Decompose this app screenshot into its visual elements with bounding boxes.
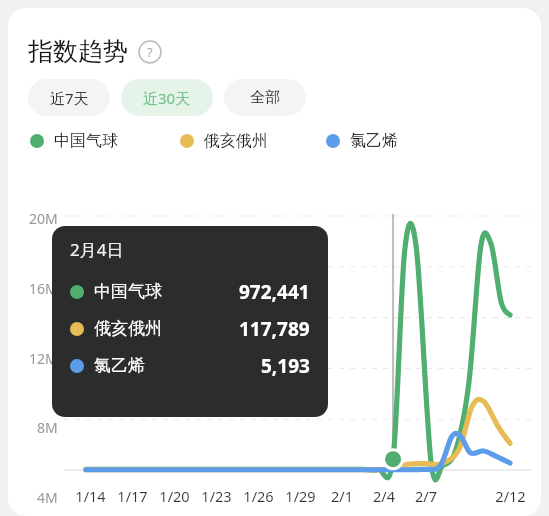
button[interactable]: 俄亥俄州 xyxy=(180,131,268,151)
staticText: 1/23 xyxy=(201,486,232,506)
staticText: 1/20 xyxy=(159,486,190,506)
staticText: 全部 xyxy=(250,88,280,107)
button[interactable]: 2月4日 xyxy=(52,226,328,417)
staticText: 5,193 xyxy=(261,353,310,379)
staticText: 117,789 xyxy=(239,316,310,342)
button[interactable]: 氯乙烯 xyxy=(326,131,398,151)
staticText: 1/14 xyxy=(75,486,106,506)
button[interactable]: 帮助 xyxy=(138,40,162,64)
staticText: 16M xyxy=(29,279,58,298)
staticText: 俄亥俄州 xyxy=(204,131,268,151)
staticText: ? xyxy=(147,43,153,61)
staticText: 12M xyxy=(29,349,58,368)
staticText: 氯乙烯 xyxy=(350,131,398,151)
staticText: 近30天 xyxy=(143,88,191,108)
button[interactable]: 全部 xyxy=(224,79,306,116)
staticText: 1/29 xyxy=(285,486,316,506)
staticText: 指数趋势 xyxy=(28,36,128,67)
staticText: 氯乙烯 xyxy=(94,355,145,376)
button[interactable]: 近30天 xyxy=(121,79,213,116)
staticText: 972,441 xyxy=(239,279,310,305)
staticText: 2/1 xyxy=(331,486,353,506)
button[interactable]: 中国气球 xyxy=(30,131,118,151)
staticText: 8M xyxy=(37,418,58,437)
staticText: 2/7 xyxy=(415,486,437,506)
staticText: 4M xyxy=(37,488,58,507)
staticText: 俄亥俄州 xyxy=(94,318,162,339)
staticText: 近7天 xyxy=(50,88,89,108)
staticText: 20M xyxy=(29,209,58,228)
staticText: 2月4日 xyxy=(70,238,124,261)
staticText: 2/12 xyxy=(495,486,526,506)
staticText: 中国气球 xyxy=(94,281,162,302)
staticText: 2/4 xyxy=(373,486,395,506)
staticText: 1/26 xyxy=(243,486,274,506)
button[interactable]: 近7天 xyxy=(28,79,110,116)
staticText: 1/17 xyxy=(117,486,148,506)
staticText: 中国气球 xyxy=(54,131,118,151)
